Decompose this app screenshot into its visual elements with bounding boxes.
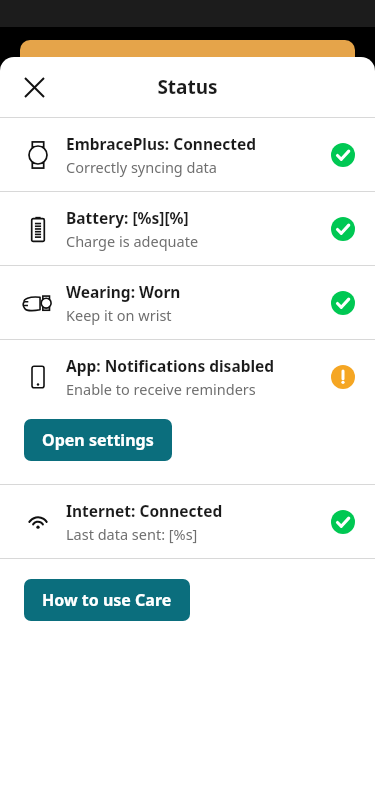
staticText: Enable to receive reminders [66,379,256,399]
staticText: Keep it on wrist [66,305,172,325]
button[interactable]: EmbracePlus: Connected [0,118,375,191]
staticText: App: Notifications disabled [66,355,275,376]
button[interactable]: Open settings [24,419,172,461]
staticText: Wearing: Worn [66,281,181,302]
button[interactable]: App: Notifications disabled [0,340,375,413]
button[interactable]: Battery: [%s][%] [0,192,375,265]
staticText: Charge is adequate [66,231,199,251]
staticText: How to use Care [42,589,172,611]
button[interactable]: How to use Care [24,579,190,621]
button[interactable]: Internet: Connected [0,485,375,558]
button[interactable]: Wearing: Worn [0,266,375,339]
staticText: Status [157,74,218,100]
staticText: Correctly syncing data [66,157,217,177]
staticText: Last data sent: [%s] [66,524,198,544]
button[interactable]: Close [12,65,56,109]
staticText: Internet: Connected [66,500,223,521]
staticText: Battery: [%s][%] [66,207,189,228]
staticText: Open settings [42,429,154,451]
staticText: EmbracePlus: Connected [66,133,257,154]
